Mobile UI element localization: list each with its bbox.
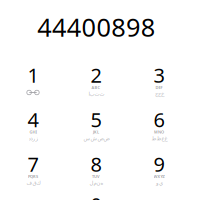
staticText: ك‌ق‌ف	[26, 180, 40, 186]
staticText: 7	[27, 151, 38, 177]
staticText: 44400898	[37, 10, 155, 44]
staticText: 4	[27, 106, 38, 133]
staticText: ض‌ص‌ش‌س	[83, 135, 109, 142]
staticText: PQRS	[28, 174, 38, 179]
button[interactable]: 2	[64, 66, 127, 110]
staticText: ث‌ت‌ب‌ا	[88, 91, 104, 97]
button[interactable]: One, voicemail	[1, 66, 64, 110]
staticText: 0	[90, 191, 101, 200]
staticText: ABC	[91, 85, 100, 90]
staticText: 3	[153, 62, 164, 88]
staticText: WXYZ	[153, 174, 164, 179]
staticText: 9	[153, 151, 164, 177]
staticText: DEF	[155, 85, 162, 90]
staticText: GHI	[29, 129, 36, 135]
staticText: ي‌و	[155, 180, 162, 186]
staticText: غ‌ع‌ظ‌ط	[151, 135, 167, 142]
staticText: ز‌ر‌ذ‌د	[28, 135, 38, 142]
button[interactable]: 4	[1, 110, 64, 155]
button[interactable]: 9	[127, 155, 190, 199]
staticText: 5	[90, 106, 101, 133]
button[interactable]: 7	[1, 155, 64, 199]
button[interactable]: 0	[64, 195, 127, 200]
staticText: MNO	[154, 129, 164, 135]
staticText: 1	[27, 62, 38, 88]
staticText: 8	[90, 151, 101, 177]
staticText: TUV	[92, 174, 100, 179]
staticText: ه‌ن‌م‌ل	[89, 180, 103, 186]
button[interactable]: 6	[127, 110, 190, 155]
staticText: خ‌ح‌ج	[154, 91, 163, 97]
button[interactable]: 3	[127, 66, 190, 110]
staticText: JKL	[93, 129, 99, 135]
staticText: 6	[153, 106, 164, 133]
staticText: 2	[90, 62, 101, 88]
button[interactable]: 5	[64, 110, 127, 155]
button[interactable]: 8	[64, 155, 127, 199]
